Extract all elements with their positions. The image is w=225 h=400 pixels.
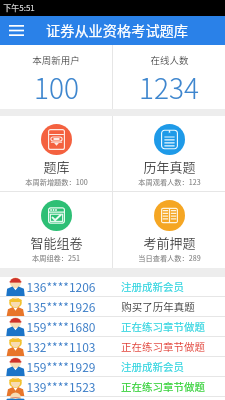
staticText: 题库 (43, 157, 70, 176)
staticText: 本周组卷：251 (32, 253, 80, 263)
button[interactable]: 159****1929 (0, 357, 225, 377)
staticText: 注册成新会员 (121, 279, 184, 294)
staticText: 136****1206 (26, 278, 96, 295)
staticText: 证券从业资格考试题库 (46, 20, 188, 41)
staticText: 当日查看人数：289 (138, 253, 201, 263)
button[interactable]: 139****1523 (0, 377, 225, 397)
button[interactable]: 考前押题 (113, 192, 225, 268)
staticText: 本周观看人数：123 (138, 177, 201, 187)
staticText: 本周新增题数：100 (25, 177, 88, 187)
staticText: 1234 (139, 67, 199, 108)
staticText: 本周新用户 (32, 53, 80, 67)
staticText: 135****1926 (26, 298, 96, 315)
staticText: 考前押题 (143, 233, 196, 252)
staticText: 159****1680 (26, 318, 96, 335)
button[interactable]: 智能组卷 (0, 192, 112, 268)
button[interactable]: 159****1680 (0, 317, 225, 337)
staticText: 注册成新会员 (121, 359, 184, 374)
staticText: 132****1103 (26, 338, 96, 355)
button[interactable]: 在线人数 (113, 45, 225, 109)
button[interactable]: 本周新用户 (0, 45, 112, 109)
button[interactable]: 136****1206 (0, 277, 225, 297)
staticText: 购买了历年真题 (121, 299, 195, 314)
button[interactable]: Menu (0, 16, 32, 45)
staticText: 159****1929 (26, 358, 96, 375)
staticText: 正在练习章节做题 (121, 339, 205, 354)
staticText: 100 (34, 67, 79, 108)
staticText: 正在练习章节做题 (121, 319, 205, 334)
button[interactable]: 121****1024 (0, 397, 225, 400)
staticText: 在线人数 (150, 53, 189, 67)
staticText: 正在练习章节做题 (121, 379, 205, 394)
staticText: 下午5:51 (3, 2, 35, 14)
button[interactable]: 135****1926 (0, 297, 225, 317)
button[interactable]: 历年真题 (113, 116, 225, 191)
staticText: 历年真题 (143, 157, 196, 176)
staticText: 智能组卷 (30, 233, 83, 252)
button[interactable]: 132****1103 (0, 337, 225, 357)
staticText: 139****1523 (26, 378, 96, 395)
button[interactable]: 题库 (0, 116, 112, 191)
